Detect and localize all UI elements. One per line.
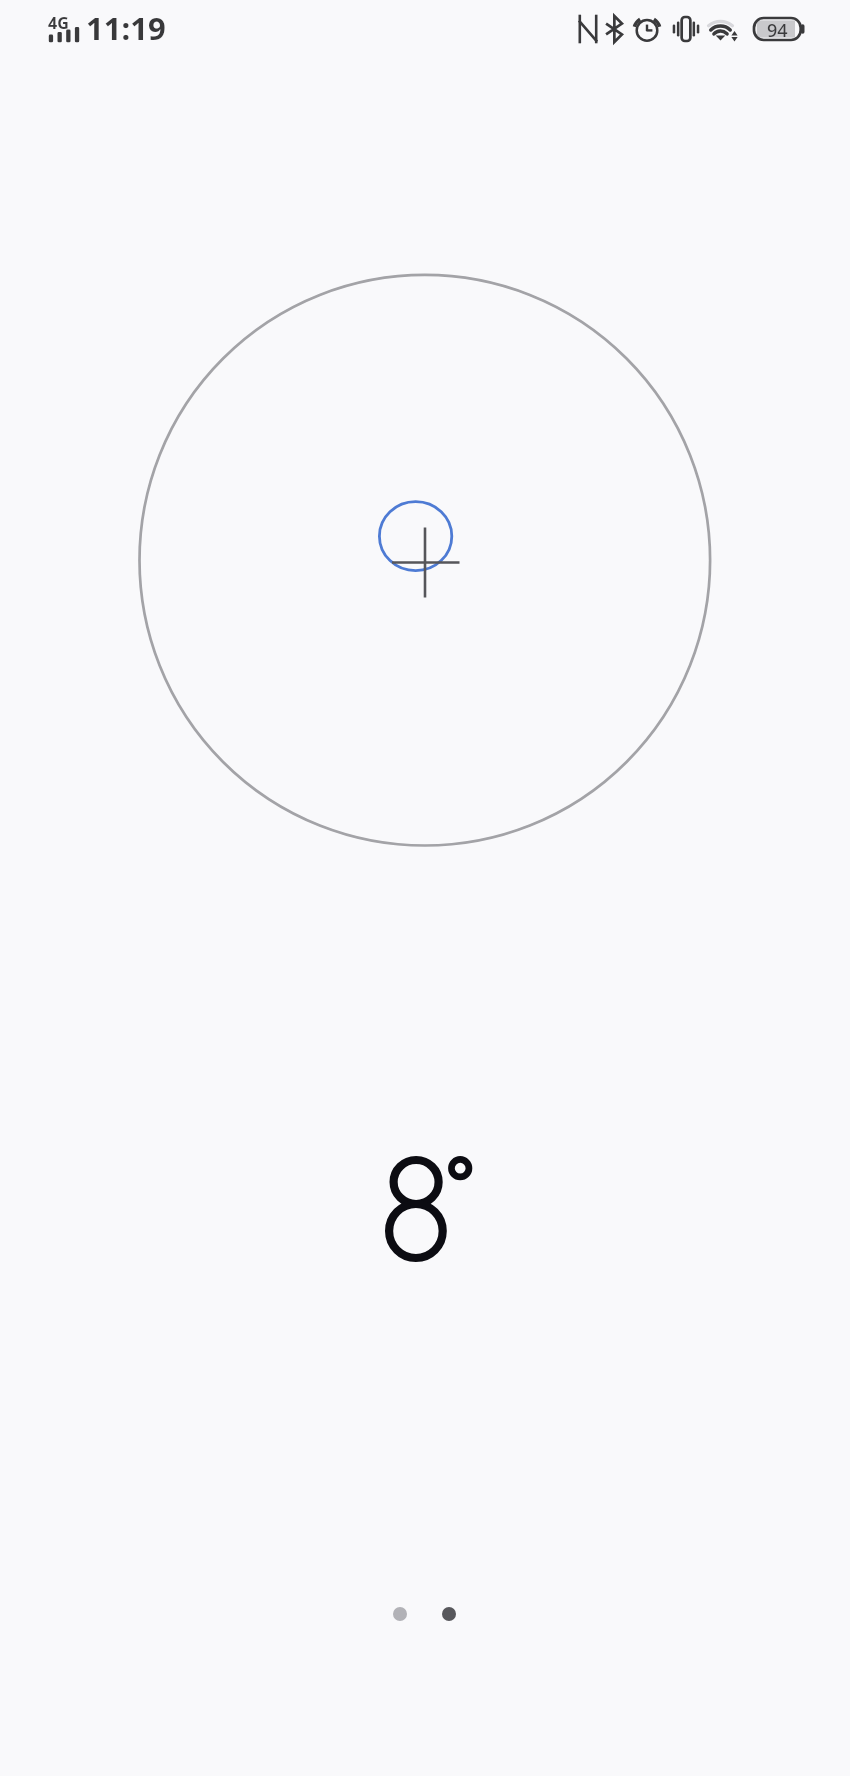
staticText: 94 <box>767 18 788 40</box>
button[interactable]: Page 2 <box>442 1607 456 1621</box>
other: Bluetooth on <box>605 16 623 42</box>
button[interactable]: Page 1 <box>393 1607 407 1621</box>
other: Mobile signal, 4G <box>48 12 80 46</box>
button[interactable]: Level dial <box>139 274 711 846</box>
other: Alarm set <box>635 17 661 42</box>
other: Ringer set to vibrate <box>672 17 700 41</box>
other: NFC on <box>578 16 598 42</box>
other: Battery 94 percent <box>754 18 805 40</box>
staticText: 4G <box>48 12 69 34</box>
staticText: 11:19 <box>86 7 166 49</box>
other: Wi-Fi connected <box>705 18 741 41</box>
button[interactable]: 8 degrees <box>372 1144 488 1274</box>
